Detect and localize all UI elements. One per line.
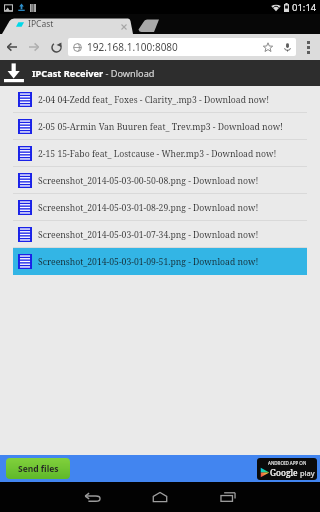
button[interactable]: Recent apps bbox=[208, 482, 248, 512]
staticText: 2-04 04-Zedd feat_ Foxes - Clarity_.mp3 … bbox=[38, 94, 270, 106]
button[interactable]: Screenshot_2014-05-03-01-09-51.png - Dow… bbox=[13, 248, 307, 275]
staticText: Screenshot_2014-05-03-01-09-51.png - Dow… bbox=[38, 256, 259, 268]
button[interactable]: Reload bbox=[46, 37, 66, 57]
staticText: - Download bbox=[103, 67, 155, 80]
staticText: 2-05 05-Armin Van Buuren feat_ Trev.mp3 … bbox=[38, 121, 283, 133]
staticText: Google bbox=[270, 467, 298, 478]
button[interactable]: 2-05 05-Armin Van Buuren feat_ Trev.mp3 … bbox=[13, 113, 307, 140]
staticText: ANDROID APP ON bbox=[268, 460, 307, 466]
staticText: play bbox=[298, 468, 315, 478]
button[interactable]: Screenshot_2014-05-03-01-07-34.png - Dow… bbox=[13, 221, 307, 248]
staticText: 192.168.1.100:8080 bbox=[87, 40, 178, 54]
button[interactable]: Forward bbox=[24, 37, 44, 57]
button[interactable]: Screenshot_2014-05-03-01-08-29.png - Dow… bbox=[13, 194, 307, 221]
button[interactable]: Close tab bbox=[118, 21, 129, 32]
button[interactable]: Screenshot_2014-05-03-00-50-08.png - Dow… bbox=[13, 167, 307, 194]
staticText: 01:14 bbox=[292, 1, 317, 14]
staticText: Screenshot_2014-05-03-01-08-29.png - Dow… bbox=[38, 202, 259, 214]
staticText: Screenshot_2014-05-03-00-50-08.png - Dow… bbox=[38, 175, 259, 187]
button[interactable]: Android app on Google Play bbox=[257, 458, 317, 480]
staticText: IPCast Receiver bbox=[32, 67, 103, 80]
staticText: IPCast bbox=[28, 18, 54, 30]
button[interactable]: Home bbox=[140, 482, 180, 512]
button[interactable] bbox=[0, 14, 320, 34]
button[interactable]: New tab bbox=[140, 21, 160, 34]
button[interactable]: Back bbox=[2, 37, 22, 57]
button[interactable]: Send files bbox=[6, 458, 70, 479]
button[interactable]: 2-04 04-Zedd feat_ Foxes - Clarity_.mp3 … bbox=[13, 86, 307, 113]
button[interactable]: 2-15 15-Fabo feat_ Lostcause - Wher.mp3 … bbox=[13, 140, 307, 167]
staticText: 2-15 15-Fabo feat_ Lostcause - Wher.mp3 … bbox=[38, 148, 277, 160]
button[interactable]: Menu bbox=[296, 34, 320, 60]
staticText: Screenshot_2014-05-03-01-07-34.png - Dow… bbox=[38, 229, 259, 241]
staticText: Send files bbox=[18, 463, 59, 475]
button[interactable]: 192.168.1.100:8080 bbox=[68, 38, 296, 56]
button[interactable]: Back bbox=[72, 482, 112, 512]
